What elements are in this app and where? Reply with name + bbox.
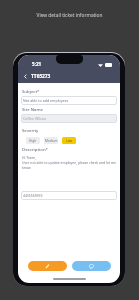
staticText: 4455565959 [23,193,43,198]
staticText: Description* [22,146,48,152]
button[interactable]: Coffee Wilcox [23,114,117,123]
button[interactable]: Low [62,137,76,144]
staticText: View detail ticket information [0,12,139,19]
button[interactable]: 4455565959 [23,191,117,200]
staticText: Site Name [22,106,44,112]
staticText: Severity [22,127,39,133]
staticText: 5:21 [32,61,42,67]
staticText: High [29,139,37,143]
staticText: Medium [45,139,58,143]
staticText: TT65273 [31,73,51,80]
staticText: Not able to add employees [23,98,69,103]
button[interactable]: Comment [72,261,111,271]
button[interactable]: High [26,137,40,144]
button[interactable]: Back [21,72,30,81]
staticText: Coffee Wilcox [23,116,46,121]
button[interactable]: Edit [28,261,67,271]
button[interactable]: Not able to add employees [23,96,117,105]
staticText: Hi Team, User not able to update employe… [22,155,117,170]
staticText: Low [66,139,73,143]
button[interactable]: Medium [44,137,58,144]
staticText: Subject* [22,88,40,94]
